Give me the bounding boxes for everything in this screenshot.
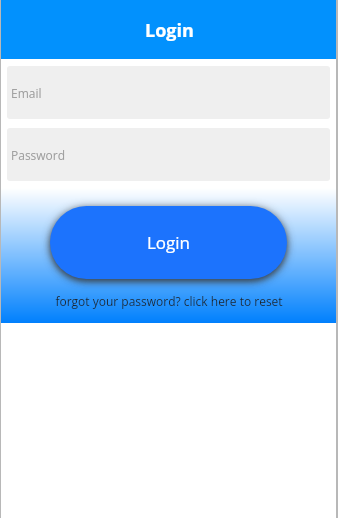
button[interactable]: Email	[7, 66, 330, 119]
button[interactable]: Password	[7, 128, 330, 181]
staticText: Login	[145, 18, 194, 43]
staticText: Login	[147, 231, 191, 254]
button[interactable]: forgot your password? click here to rese…	[0, 293, 338, 313]
button[interactable]: Login	[50, 206, 287, 279]
staticText: Password	[11, 147, 66, 163]
staticText: forgot your password? click here to rese…	[55, 293, 283, 309]
staticText: Email	[11, 85, 42, 101]
